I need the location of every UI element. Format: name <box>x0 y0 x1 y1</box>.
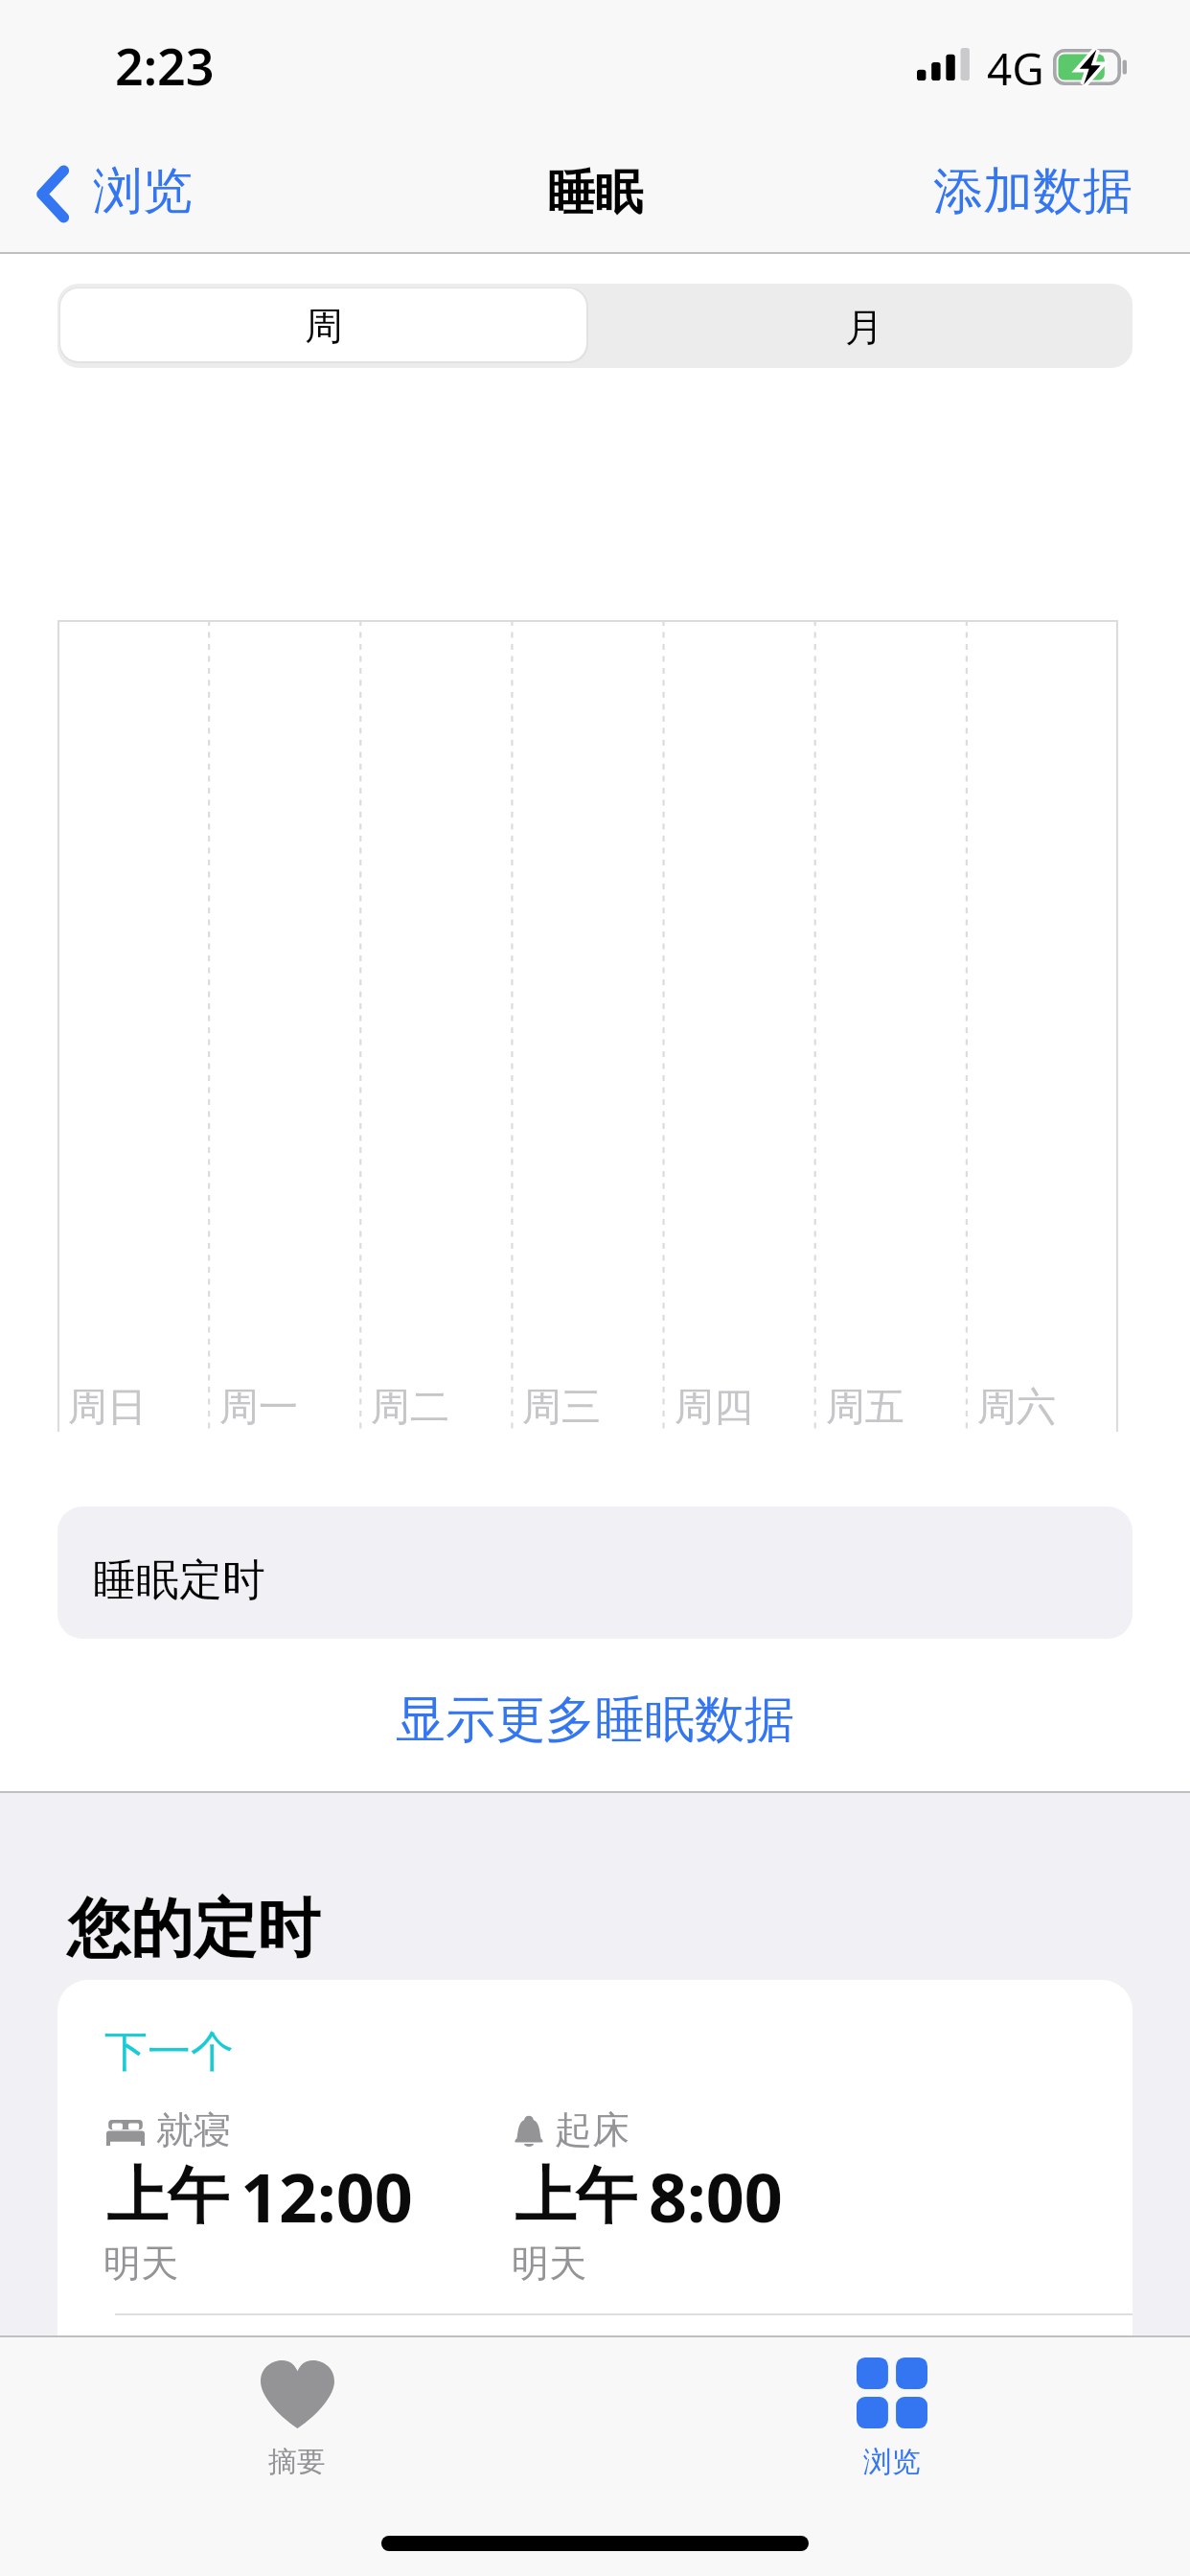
button[interactable]: 显示更多睡眠数据 <box>0 1658 1190 1782</box>
staticText: 12:00 <box>240 2150 413 2242</box>
staticText: 上午 <box>106 2157 229 2235</box>
button[interactable]: 下一个 <box>57 1980 1133 2336</box>
button[interactable]: 添加数据 <box>933 160 1133 223</box>
staticText: 周三 <box>522 1383 601 1433</box>
staticText: 您的定时 <box>67 1889 320 1968</box>
staticText: 周 <box>305 302 343 350</box>
button[interactable]: 返回浏览 <box>37 152 193 235</box>
button[interactable]: 月 <box>595 284 1133 368</box>
button[interactable]: 摘要 <box>222 2360 372 2480</box>
staticText: 2:23 <box>115 32 215 100</box>
staticText: 周四 <box>675 1383 753 1433</box>
staticText: 睡眠 <box>547 163 643 223</box>
staticText: 周五 <box>826 1383 904 1433</box>
button[interactable]: 睡眠定时 <box>57 1506 1133 1639</box>
staticText: 就寝 <box>156 2106 231 2153</box>
staticText: 周一 <box>219 1383 298 1433</box>
staticText: 周二 <box>371 1383 449 1433</box>
staticText: 周日 <box>68 1383 147 1433</box>
staticText: 明天 <box>103 2240 178 2287</box>
staticText: 睡眠定时 <box>93 1553 265 1608</box>
staticText: 4G <box>987 38 1044 99</box>
staticText: 起床 <box>555 2106 629 2153</box>
button[interactable]: 浏览 <box>817 2357 967 2480</box>
staticText: 上午 <box>515 2157 637 2235</box>
staticText: 明天 <box>512 2240 586 2287</box>
staticText: 下一个 <box>104 2025 234 2080</box>
button[interactable]: 周 <box>60 288 586 361</box>
staticText: 显示更多睡眠数据 <box>396 1689 794 1752</box>
staticText: 浏览 <box>93 160 193 223</box>
staticText: 摘要 <box>268 2444 326 2480</box>
staticText: 浏览 <box>863 2444 921 2480</box>
staticText: 周六 <box>977 1383 1056 1433</box>
staticText: 月 <box>845 303 883 351</box>
staticText: 8:00 <box>649 2150 783 2242</box>
